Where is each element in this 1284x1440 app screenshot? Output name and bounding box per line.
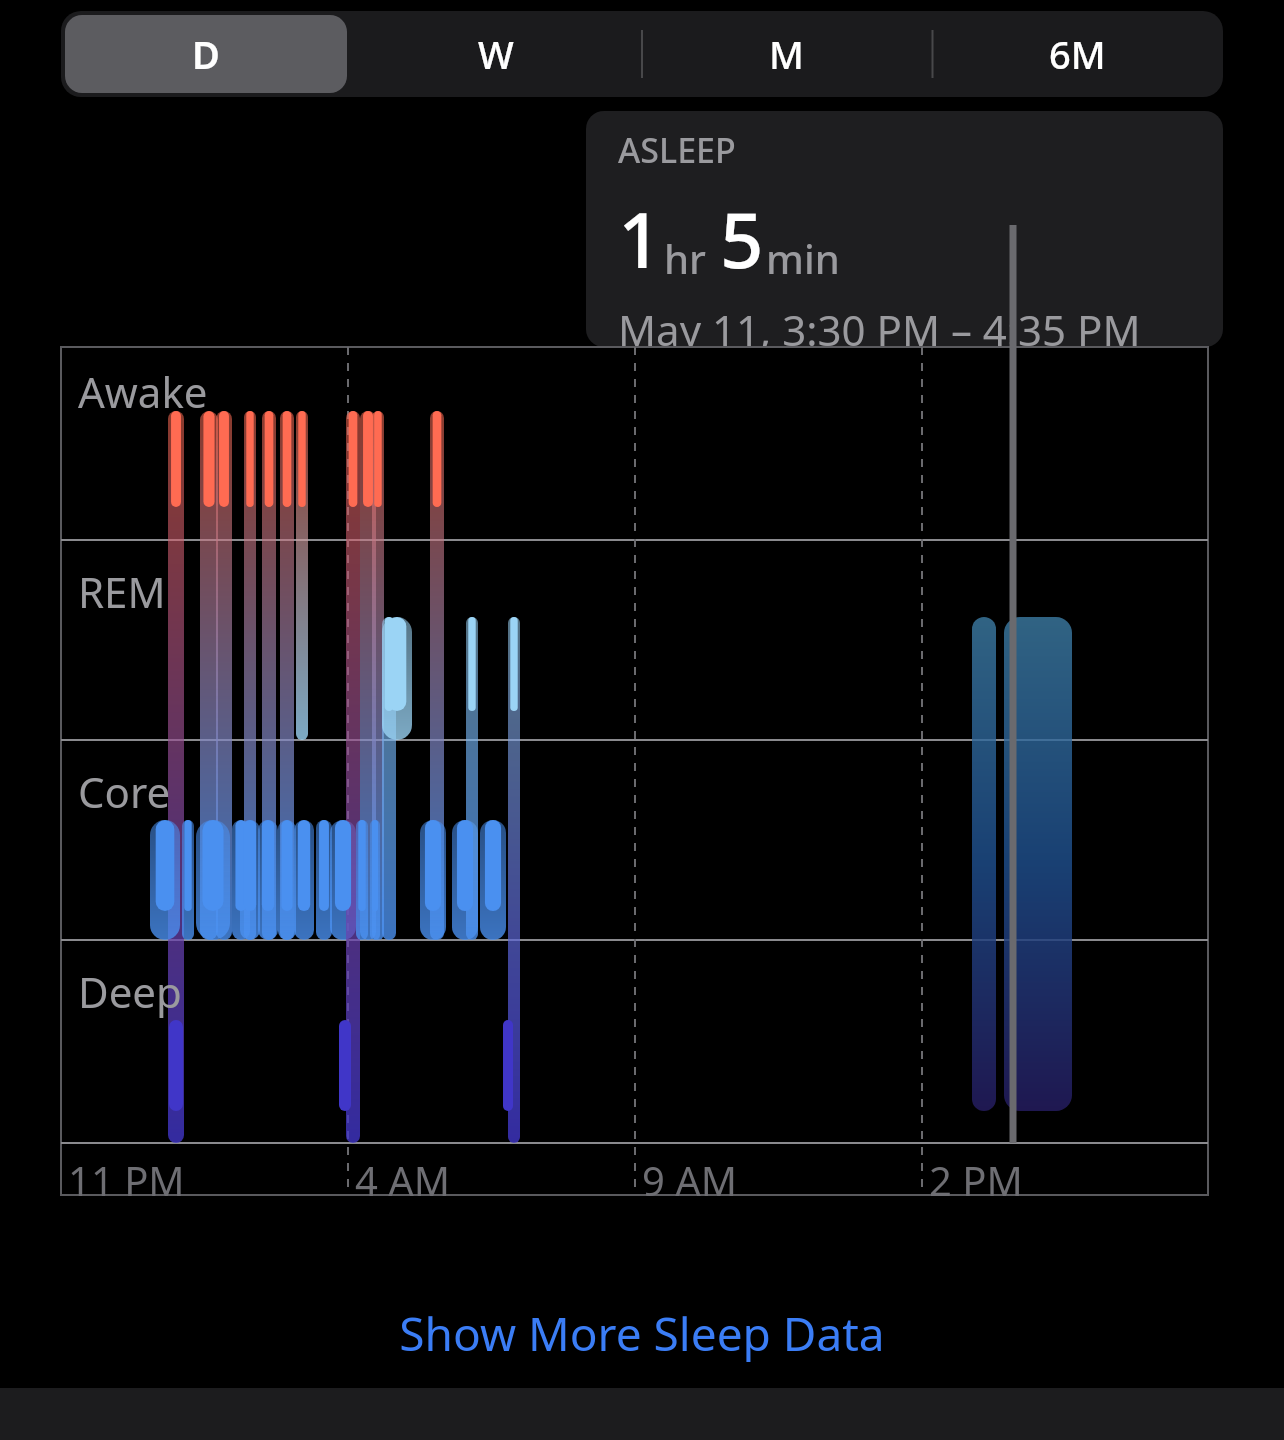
staticText: W bbox=[478, 28, 514, 80]
staticText: 11 PM bbox=[68, 1153, 185, 1207]
button[interactable]: M bbox=[645, 15, 928, 93]
staticText: Awake bbox=[78, 363, 208, 420]
button[interactable]: Sleep stages chart bbox=[0, 111, 1284, 1221]
button[interactable]: W bbox=[355, 15, 637, 93]
staticText: Show More Sleep Data bbox=[399, 1302, 885, 1365]
staticText: May 11, 3:30 PM – 4:35 PM bbox=[618, 301, 1141, 347]
button[interactable]: D bbox=[65, 15, 347, 93]
staticText: D bbox=[192, 28, 220, 80]
button[interactable]: 6M bbox=[936, 15, 1219, 93]
staticText: 4 AM bbox=[355, 1153, 451, 1207]
staticText: 1 bbox=[618, 187, 662, 291]
staticText: M bbox=[769, 28, 804, 80]
staticText: 2 PM bbox=[929, 1153, 1023, 1207]
staticText: 9 AM bbox=[642, 1153, 738, 1207]
button[interactable]: Show More Sleep Data bbox=[0, 1285, 1284, 1381]
staticText: REM bbox=[78, 563, 166, 620]
staticText: min bbox=[766, 231, 840, 285]
button[interactable]: ASLEEP bbox=[586, 111, 1223, 347]
staticText: Core bbox=[78, 763, 171, 820]
staticText: 5 bbox=[720, 187, 764, 291]
staticText: Deep bbox=[78, 963, 182, 1020]
staticText: ASLEEP bbox=[618, 127, 736, 173]
staticText: 6M bbox=[1049, 28, 1106, 80]
staticText: hr bbox=[664, 231, 706, 285]
